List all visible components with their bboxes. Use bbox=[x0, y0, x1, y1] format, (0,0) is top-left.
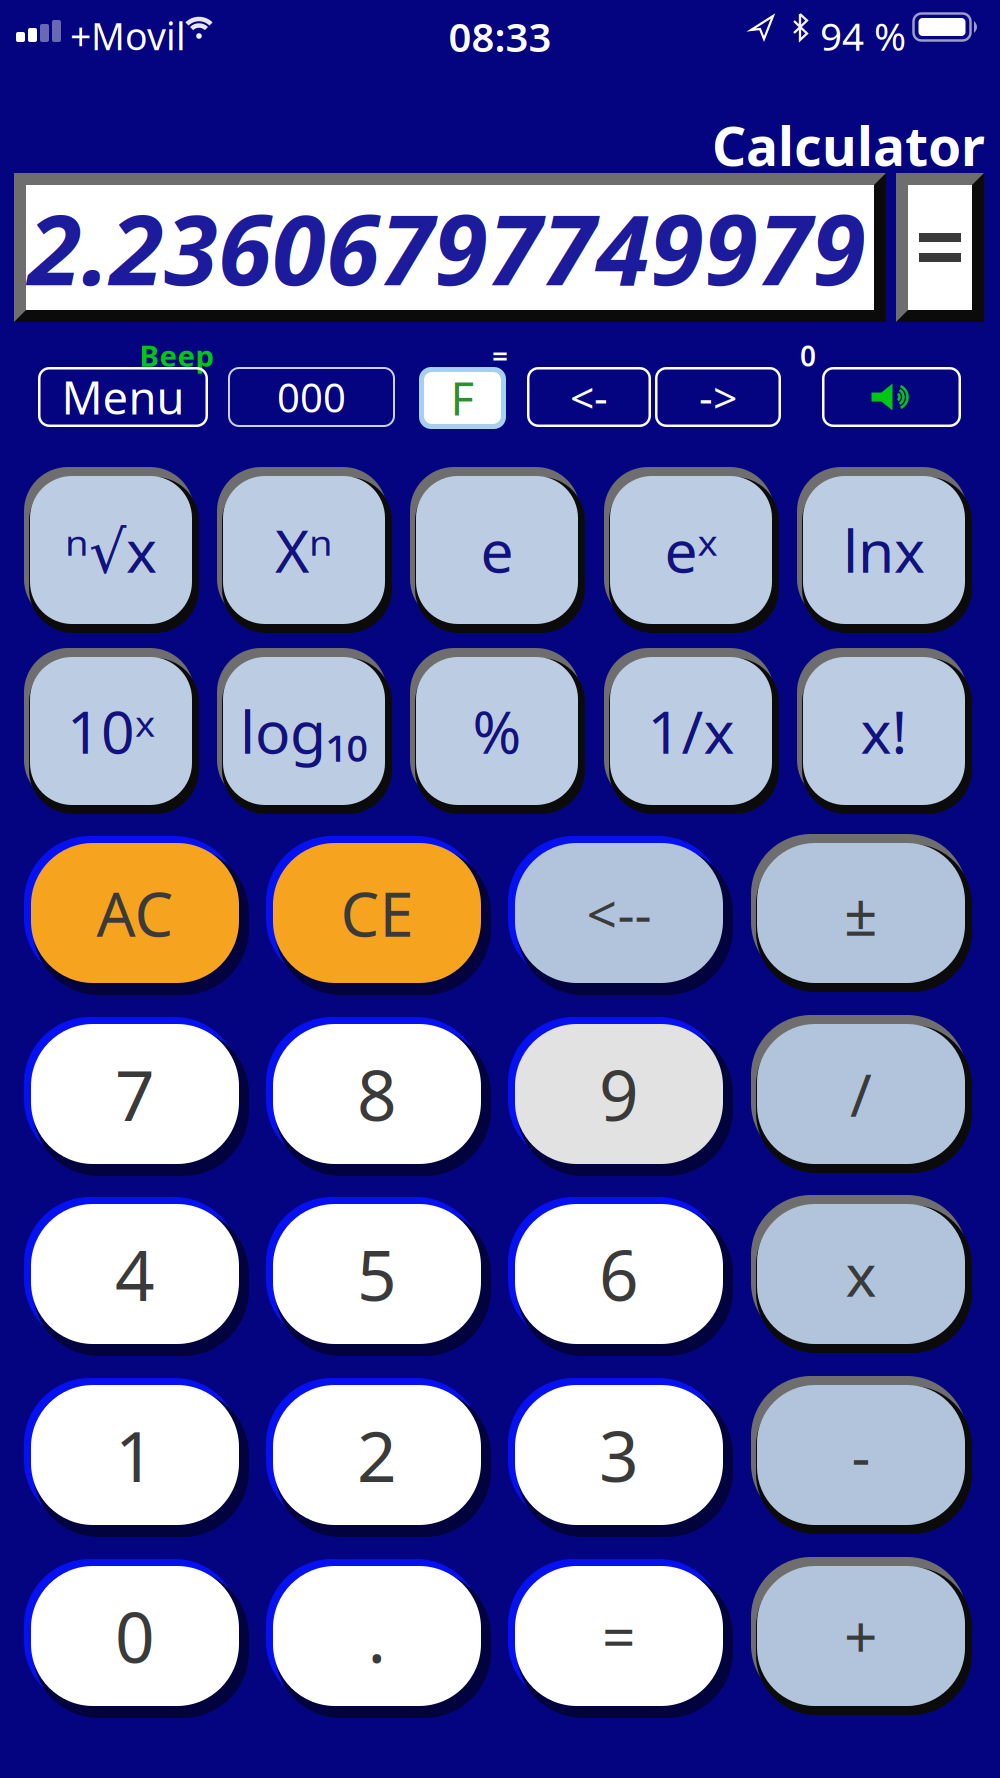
button[interactable]: ⁿ√x bbox=[30, 476, 192, 624]
staticText: / bbox=[850, 1055, 872, 1133]
button[interactable]: 0 bbox=[31, 1566, 239, 1706]
button[interactable]: AC bbox=[31, 843, 239, 983]
staticText: Beep bbox=[139, 336, 214, 375]
button[interactable]: 1 bbox=[31, 1385, 239, 1525]
staticText: = bbox=[492, 337, 508, 374]
button[interactable]: 10ˣ bbox=[30, 657, 192, 805]
staticText: <- bbox=[570, 369, 608, 425]
button[interactable]: 2 bbox=[273, 1385, 481, 1525]
button[interactable]: x! bbox=[803, 657, 965, 805]
staticText: Calculator bbox=[712, 110, 985, 181]
staticText: - bbox=[851, 1416, 870, 1494]
staticText: 08:33 bbox=[448, 10, 551, 63]
button[interactable]: Equals bbox=[896, 173, 984, 322]
staticText: 000 bbox=[277, 370, 346, 423]
staticText: 2 bbox=[357, 1409, 397, 1501]
staticText: +Movil bbox=[70, 11, 186, 61]
staticText: Xⁿ bbox=[275, 511, 333, 589]
staticText: -> bbox=[699, 369, 737, 425]
button[interactable]: 8 bbox=[273, 1024, 481, 1164]
button[interactable]: 000 bbox=[228, 367, 395, 427]
button[interactable]: <- bbox=[527, 367, 651, 427]
button[interactable]: log₁₀ bbox=[223, 657, 385, 805]
staticText: ± bbox=[844, 874, 878, 952]
staticText: + bbox=[844, 1597, 878, 1675]
button[interactable]: + bbox=[757, 1566, 965, 1706]
button[interactable]: -> bbox=[655, 367, 781, 427]
staticText: lnx bbox=[843, 511, 925, 589]
staticText: log₁₀ bbox=[240, 692, 368, 770]
staticText: 10ˣ bbox=[67, 692, 155, 770]
button[interactable]: 3 bbox=[515, 1385, 723, 1525]
staticText: 2.23606797749979 bbox=[28, 183, 866, 312]
staticText: . bbox=[367, 1590, 386, 1682]
staticText: 6 bbox=[599, 1228, 639, 1320]
staticText: 0 bbox=[800, 337, 816, 374]
staticText: 1/x bbox=[647, 692, 734, 770]
staticText: <-- bbox=[586, 878, 651, 948]
button[interactable]: 9 bbox=[515, 1024, 723, 1164]
button[interactable]: CE bbox=[273, 843, 481, 983]
staticText: ⁿ√x bbox=[65, 511, 157, 589]
staticText: CE bbox=[340, 872, 413, 954]
staticText: = bbox=[602, 1597, 636, 1675]
button[interactable]: 1/x bbox=[610, 657, 772, 805]
button[interactable]: 6 bbox=[515, 1204, 723, 1344]
staticText: 9 bbox=[599, 1048, 639, 1140]
button[interactable]: % bbox=[416, 657, 578, 805]
staticText: x! bbox=[860, 692, 907, 770]
staticText: 1 bbox=[115, 1409, 155, 1501]
button[interactable]: - bbox=[757, 1385, 965, 1525]
staticText: 7 bbox=[115, 1048, 155, 1140]
button[interactable]: . bbox=[273, 1566, 481, 1706]
button[interactable]: eˣ bbox=[610, 476, 772, 624]
button[interactable]: 7 bbox=[31, 1024, 239, 1164]
staticText: 5 bbox=[357, 1228, 397, 1320]
staticText: x bbox=[845, 1235, 876, 1313]
button[interactable]: x bbox=[757, 1204, 965, 1344]
button[interactable]: ± bbox=[757, 843, 965, 983]
staticText: 3 bbox=[599, 1409, 639, 1501]
staticText: F bbox=[450, 368, 474, 428]
button[interactable]: <-- bbox=[515, 843, 723, 983]
button[interactable]: / bbox=[757, 1024, 965, 1164]
staticText: 4 bbox=[115, 1228, 155, 1320]
staticText: AC bbox=[96, 872, 173, 954]
button[interactable]: Xⁿ bbox=[223, 476, 385, 624]
button[interactable]: Speak bbox=[822, 367, 961, 427]
button[interactable]: 4 bbox=[31, 1204, 239, 1344]
staticText: % bbox=[472, 692, 521, 770]
button[interactable]: = bbox=[515, 1566, 723, 1706]
button[interactable]: lnx bbox=[803, 476, 965, 624]
button[interactable]: 5 bbox=[273, 1204, 481, 1344]
staticText: e bbox=[480, 511, 513, 589]
staticText: Menu bbox=[61, 367, 184, 427]
button[interactable]: F bbox=[419, 367, 506, 429]
staticText: 8 bbox=[357, 1048, 397, 1140]
staticText: 94 % bbox=[820, 10, 906, 61]
staticText: 0 bbox=[115, 1590, 155, 1682]
button[interactable]: Menu bbox=[38, 367, 208, 427]
button[interactable]: e bbox=[416, 476, 578, 624]
staticText: eˣ bbox=[664, 511, 717, 589]
